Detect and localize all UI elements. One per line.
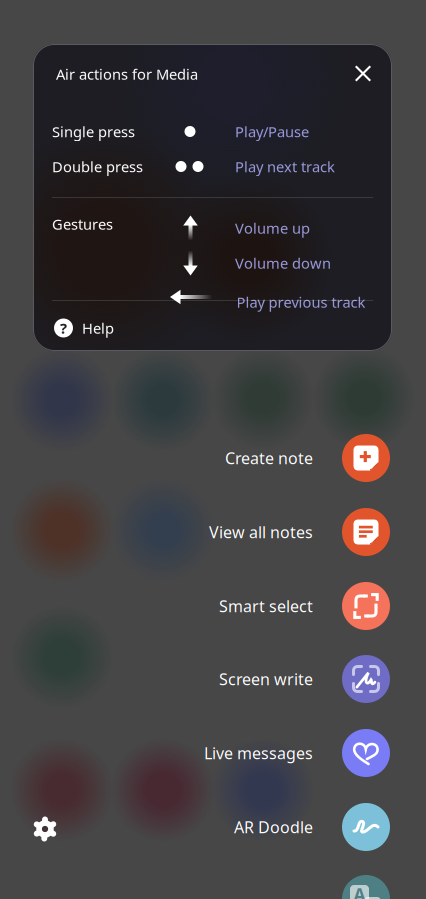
button[interactable]: Smart select (0, 569, 426, 642)
staticText: Smart select (219, 595, 313, 617)
button[interactable]: Screen write (0, 642, 426, 715)
staticText: Gestures (52, 214, 113, 234)
staticText: Air actions for Media (56, 64, 198, 84)
staticText: Create note (225, 447, 313, 469)
staticText: Play next track (235, 157, 335, 176)
staticText: A (353, 883, 365, 899)
staticText: AR Doodle (234, 816, 313, 838)
staticText: Screen write (219, 668, 313, 690)
staticText: Single press (52, 122, 135, 141)
staticText: Play previous track (236, 292, 365, 312)
staticText: Live messages (204, 742, 313, 764)
staticText: Double press (52, 157, 143, 176)
staticText: Volume down (235, 253, 331, 273)
button[interactable]: View all notes (0, 495, 426, 568)
staticText: Play/Pause (235, 122, 309, 141)
button[interactable]: ? (33, 303, 392, 353)
staticText: Volume up (235, 218, 310, 238)
button[interactable]: Close (345, 55, 381, 91)
staticText: View all notes (209, 521, 313, 543)
button[interactable]: AR Doodle (0, 790, 426, 863)
button[interactable]: Create note (0, 421, 426, 494)
button[interactable]: Live messages (0, 716, 426, 789)
button[interactable]: Settings (22, 806, 68, 852)
staticText: ? (60, 318, 67, 338)
staticText: Help (82, 318, 114, 338)
